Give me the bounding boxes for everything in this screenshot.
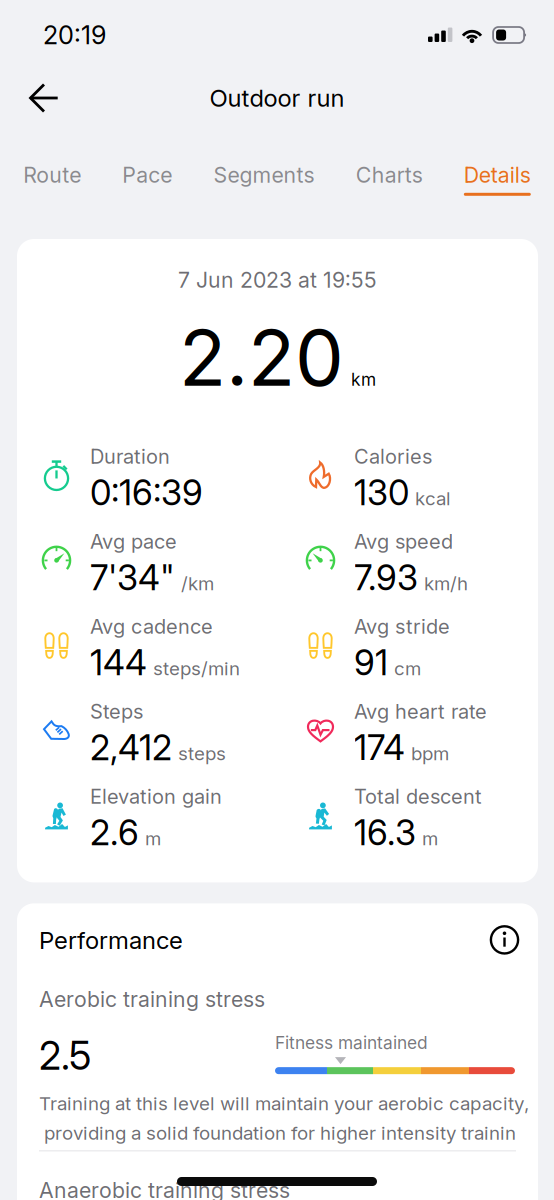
staticText: Total descent bbox=[354, 784, 482, 809]
staticText: 2.5 bbox=[39, 1032, 91, 1079]
staticText: Duration bbox=[90, 444, 170, 469]
staticText: Avg speed bbox=[354, 529, 453, 554]
staticText: Avg heart rate bbox=[354, 699, 487, 724]
staticText: Elevation gain bbox=[90, 784, 222, 809]
staticText: providing a solid foundation for higher … bbox=[39, 1122, 516, 1144]
staticText: kcal bbox=[415, 487, 451, 510]
staticText: Performance bbox=[39, 926, 183, 955]
staticText: Pace bbox=[122, 162, 172, 188]
staticText: 144 bbox=[90, 642, 147, 683]
staticText: Avg stride bbox=[354, 614, 450, 639]
staticText: 16.3 bbox=[354, 812, 416, 853]
staticText: Steps bbox=[90, 699, 143, 724]
staticText: 7 Jun 2023 at 19:55 bbox=[178, 267, 377, 293]
staticText: m bbox=[145, 827, 161, 850]
staticText: Charts bbox=[356, 162, 423, 188]
staticText: steps bbox=[178, 742, 226, 765]
staticText: Outdoor run bbox=[209, 83, 344, 112]
staticText: 0:16:39 bbox=[90, 472, 203, 513]
button[interactable]: Details bbox=[458, 162, 537, 196]
staticText: km bbox=[351, 369, 376, 390]
staticText: 20:19 bbox=[43, 20, 106, 50]
staticText: steps/min bbox=[153, 657, 240, 680]
staticText: /km bbox=[181, 572, 214, 595]
staticText: Fitness maintained bbox=[275, 1032, 428, 1053]
button[interactable]: Pace bbox=[116, 162, 178, 196]
staticText: km/h bbox=[424, 572, 468, 595]
staticText: 2.6 bbox=[90, 812, 139, 853]
staticText: 130 bbox=[354, 472, 409, 513]
staticText: Details bbox=[464, 162, 531, 188]
staticText: Route bbox=[23, 162, 81, 188]
staticText: 2.20 bbox=[179, 311, 344, 404]
button[interactable]: Back bbox=[16, 72, 72, 124]
staticText: m bbox=[422, 827, 438, 850]
button[interactable]: Route bbox=[17, 162, 87, 196]
staticText: Anaerobic training stress bbox=[39, 1177, 290, 1200]
staticText: Avg cadence bbox=[90, 614, 213, 639]
button[interactable]: Information bbox=[484, 919, 526, 961]
staticText: 7.93 bbox=[354, 557, 418, 598]
staticText: Avg pace bbox=[90, 529, 177, 554]
staticText: 2,412 bbox=[90, 727, 172, 768]
staticText: Training at this level will maintain you… bbox=[39, 1092, 529, 1115]
staticText: Calories bbox=[354, 444, 432, 469]
staticText: 91 bbox=[354, 642, 388, 683]
button[interactable]: Charts bbox=[350, 162, 429, 196]
staticText: Aerobic training stress bbox=[39, 986, 265, 1012]
staticText: cm bbox=[394, 657, 421, 680]
staticText: Segments bbox=[213, 162, 314, 188]
staticText: bpm bbox=[411, 742, 449, 765]
button[interactable]: Segments bbox=[207, 162, 320, 196]
staticText: 174 bbox=[354, 727, 405, 768]
staticText: 7'34" bbox=[90, 557, 175, 598]
